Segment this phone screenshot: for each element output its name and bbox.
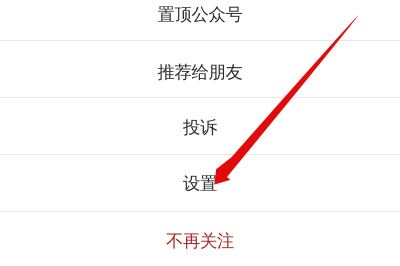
staticText: 不再关注: [166, 230, 234, 252]
button[interactable]: 置顶公众号: [0, 0, 400, 40]
button[interactable]: 推荐给朋友: [0, 41, 400, 97]
staticText: 置顶公众号: [157, 4, 242, 25]
staticText: 推荐给朋友: [157, 62, 242, 83]
staticText: 设置: [183, 173, 217, 194]
button[interactable]: 不再关注: [0, 212, 400, 266]
staticText: 投诉: [183, 117, 217, 138]
button[interactable]: 设置: [0, 155, 400, 211]
button[interactable]: 投诉: [0, 98, 400, 154]
